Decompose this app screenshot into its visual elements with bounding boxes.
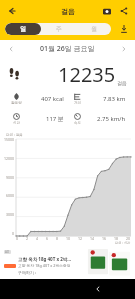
staticText: 20 <box>126 236 131 241</box>
staticText: 9000 <box>6 175 15 180</box>
staticText: 2 <box>26 236 29 241</box>
button[interactable]: 거리 <box>67 89 129 109</box>
staticText: 12000 <box>4 156 15 161</box>
staticText: 6 <box>46 236 49 241</box>
staticText: 8 <box>56 236 59 241</box>
staticText: 7.83 km <box>103 95 126 103</box>
staticText: 117 분 <box>46 115 64 123</box>
staticText: 주 <box>56 25 62 33</box>
staticText: 10 <box>66 236 71 241</box>
staticText: 6000 <box>6 193 15 198</box>
button[interactable]: 시간 <box>6 109 67 129</box>
button[interactable]: 구매하기 › <box>18 270 37 275</box>
staticText: 0 <box>12 231 15 236</box>
staticText: AD <box>5 250 10 254</box>
button[interactable]: Next day <box>117 42 131 56</box>
staticText: 활동량 <box>11 101 22 105</box>
button[interactable]: Download <box>117 22 130 35</box>
button[interactable]: 일 <box>5 23 41 35</box>
staticText: 단위 : 시간 <box>115 241 131 245</box>
button[interactable]: Camera <box>100 4 114 18</box>
staticText: 시간 <box>13 121 20 125</box>
staticText: 속도 <box>74 121 81 125</box>
staticText: 거리 <box>74 101 81 105</box>
button[interactable]: Share <box>117 4 131 18</box>
staticText: 18 <box>114 236 119 241</box>
staticText: 0 <box>16 236 19 241</box>
staticText: 고향 옥차 18g 40T x 2박스증정 <box>18 263 71 268</box>
staticText: 2.75 km/h <box>97 115 126 123</box>
staticText: 단위 : 걸음 <box>6 132 23 137</box>
staticText: 걸음 <box>61 7 75 16</box>
staticText: 4 <box>36 236 39 241</box>
staticText: 일 <box>20 25 26 33</box>
staticText: 12235 <box>58 61 116 88</box>
staticText: 14 <box>90 236 95 241</box>
staticText: 고향 옥차 18g 40T x 2박… <box>18 256 72 262</box>
button[interactable]: Previous day <box>4 42 18 56</box>
staticText: 3000 <box>6 212 15 217</box>
button[interactable]: AD <box>0 245 135 279</box>
button[interactable]: 주 <box>41 23 76 35</box>
staticText: 15000 <box>4 137 15 142</box>
button[interactable]: Back <box>91 282 105 296</box>
staticText: 01월 26일 금요일 <box>40 44 95 54</box>
staticText: 12 <box>78 236 83 241</box>
staticText: 구매하기 › <box>18 270 37 275</box>
button[interactable]: 활동량 <box>6 89 67 109</box>
staticText: 16 <box>102 236 107 241</box>
staticText: 월 <box>91 25 97 33</box>
button[interactable]: 월 <box>76 23 111 35</box>
button[interactable]: 속도 <box>67 109 129 129</box>
staticText: 407 kcal <box>41 95 64 103</box>
staticText: 걸음 <box>117 80 127 86</box>
button[interactable]: Back <box>4 3 20 19</box>
